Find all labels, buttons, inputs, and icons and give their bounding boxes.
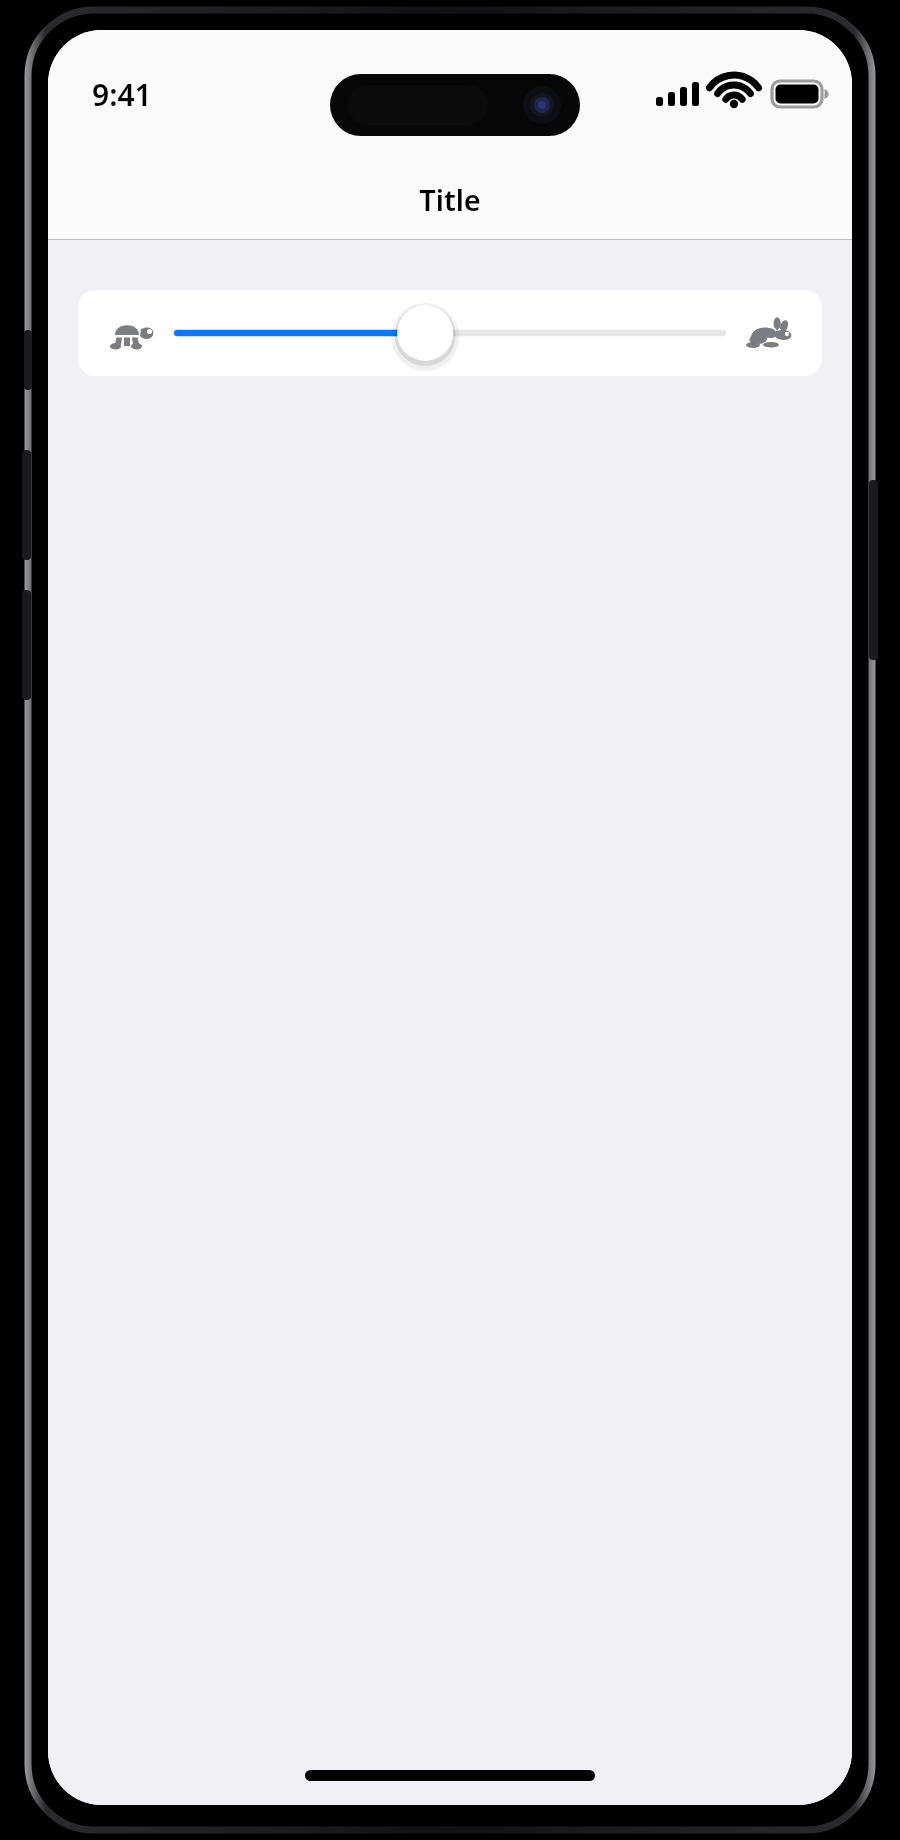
button[interactable]: Slow [100,306,162,360]
button[interactable]: Speed slider [174,290,726,376]
button[interactable]: Fast [738,306,800,360]
staticText: 9:41 [92,74,152,115]
staticText: Title [419,180,481,219]
button[interactable]: Slow [78,290,822,376]
